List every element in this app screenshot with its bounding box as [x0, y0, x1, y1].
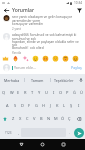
button[interactable]: Ö — [59, 112, 66, 125]
button[interactable]: Recent apps — [56, 139, 70, 150]
button[interactable]: L — [61, 99, 68, 112]
staticText: ?123 — [5, 131, 12, 135]
button[interactable]: Back — [14, 139, 28, 150]
button[interactable]: Emoji — [52, 55, 59, 62]
staticText: Ç — [68, 116, 71, 121]
button[interactable]: C — [24, 112, 31, 125]
button[interactable]: Crown emoji — [2, 55, 9, 62]
button[interactable]: Backspace — [73, 112, 85, 125]
button[interactable]: E — [15, 86, 22, 99]
button[interactable]: S — [11, 99, 19, 112]
button[interactable]: Merhaba — [0, 74, 24, 86]
staticText: Merhaba — [4, 78, 20, 83]
button[interactable]: adasyol666 Sonuhsoil ve sok bahsetmişti … — [0, 33, 85, 55]
staticText: Ğ — [73, 90, 76, 95]
button[interactable]: V — [31, 112, 38, 125]
button[interactable]: Q — [0, 86, 8, 99]
staticText: C — [26, 116, 29, 121]
button[interactable]: sevr yanıtı olsakaşım ve gelin konuşuyor… — [0, 15, 85, 31]
button[interactable]: J — [47, 99, 54, 112]
button[interactable]: Ş — [68, 99, 75, 112]
staticText: Yanıtla — [12, 51, 22, 55]
staticText: M — [54, 116, 58, 121]
staticText: I — [53, 90, 55, 95]
staticText: J — [50, 103, 52, 108]
button[interactable]: G — [33, 99, 40, 112]
staticText: sevr yanıtı olsakaşım ve gelin konuşuyor… — [12, 15, 82, 26]
button[interactable]: O — [57, 86, 64, 99]
staticText: Tamam — [31, 78, 44, 83]
button[interactable]: K — [54, 99, 61, 112]
button[interactable]: X — [17, 112, 24, 125]
staticText: Z — [12, 116, 15, 121]
button[interactable]: I — [50, 86, 57, 99]
button[interactable]: W — [8, 86, 15, 99]
button[interactable]: U — [43, 86, 50, 99]
button[interactable]: Back — [1, 6, 11, 15]
button[interactable]: Emoji — [62, 55, 69, 62]
button[interactable]: Period — [66, 125, 73, 140]
button[interactable]: Ğ — [71, 86, 78, 99]
button[interactable]: M — [52, 112, 59, 125]
button[interactable]: Ç — [66, 112, 73, 125]
staticText: adasyol666 Sonuhsoil ve sok bahsetmişti … — [12, 33, 82, 50]
button[interactable]: Y — [36, 86, 43, 99]
staticText: T — [31, 90, 34, 95]
staticText: O — [59, 90, 63, 95]
button[interactable]: Sparkle emoji — [22, 55, 29, 62]
button[interactable]: R — [22, 86, 29, 99]
staticText: I — [78, 103, 80, 108]
button[interactable]: N — [45, 112, 52, 125]
button[interactable]: Z — [10, 112, 17, 125]
staticText: A — [6, 103, 9, 108]
staticText: Y — [38, 90, 41, 95]
button[interactable]: T — [29, 86, 36, 99]
staticText: 2 yanıt — [12, 27, 22, 31]
button[interactable]: Send — [74, 128, 84, 138]
staticText: Ö — [61, 116, 65, 121]
staticText: U — [45, 90, 48, 95]
staticText: L — [63, 103, 66, 108]
button[interactable]: Emoji — [42, 55, 49, 62]
button[interactable]: Emoji — [72, 55, 79, 62]
button[interactable]: Filter — [74, 6, 84, 15]
button[interactable]: Voice input — [76, 74, 85, 86]
staticText: D — [21, 103, 24, 108]
staticText: Ş — [70, 103, 73, 108]
staticText: , — [18, 130, 19, 135]
staticText: 10:34 — [74, 1, 83, 5]
staticText: Teşekkürler — [54, 78, 74, 83]
staticText: K — [56, 103, 59, 108]
staticText: V — [33, 116, 36, 121]
button[interactable]: I — [75, 99, 82, 112]
button[interactable]: Emoji — [32, 55, 39, 62]
button[interactable]: Ü — [78, 86, 85, 99]
button[interactable]: Teşekkürler — [51, 74, 76, 86]
staticText: R — [24, 90, 27, 95]
button[interactable]: P — [64, 86, 71, 99]
button[interactable]: B — [38, 112, 45, 125]
staticText: H — [42, 103, 45, 108]
staticText: G — [35, 103, 38, 108]
button[interactable]: Fire emoji — [12, 55, 19, 62]
staticText: Q — [2, 90, 6, 95]
button[interactable]: Paylaş — [71, 65, 82, 70]
button[interactable]: Tamam — [25, 74, 50, 86]
staticText: W — [10, 90, 14, 95]
staticText: F — [28, 103, 31, 108]
button[interactable]: F — [26, 99, 33, 112]
staticText: B — [40, 116, 43, 121]
button[interactable]: Home — [35, 139, 49, 150]
staticText: S — [14, 103, 17, 108]
button[interactable]: Shift — [0, 112, 10, 125]
button[interactable]: D — [19, 99, 26, 112]
button[interactable]: H — [40, 99, 47, 112]
staticText: P — [66, 90, 69, 95]
button[interactable]: A — [3, 99, 11, 112]
button[interactable]: ?123 — [0, 125, 16, 140]
button[interactable]: Comma — [16, 125, 21, 140]
staticText: Yorumlar — [12, 7, 35, 14]
staticText: Ü — [80, 90, 83, 95]
staticText: Yorum ekle... — [14, 65, 36, 70]
